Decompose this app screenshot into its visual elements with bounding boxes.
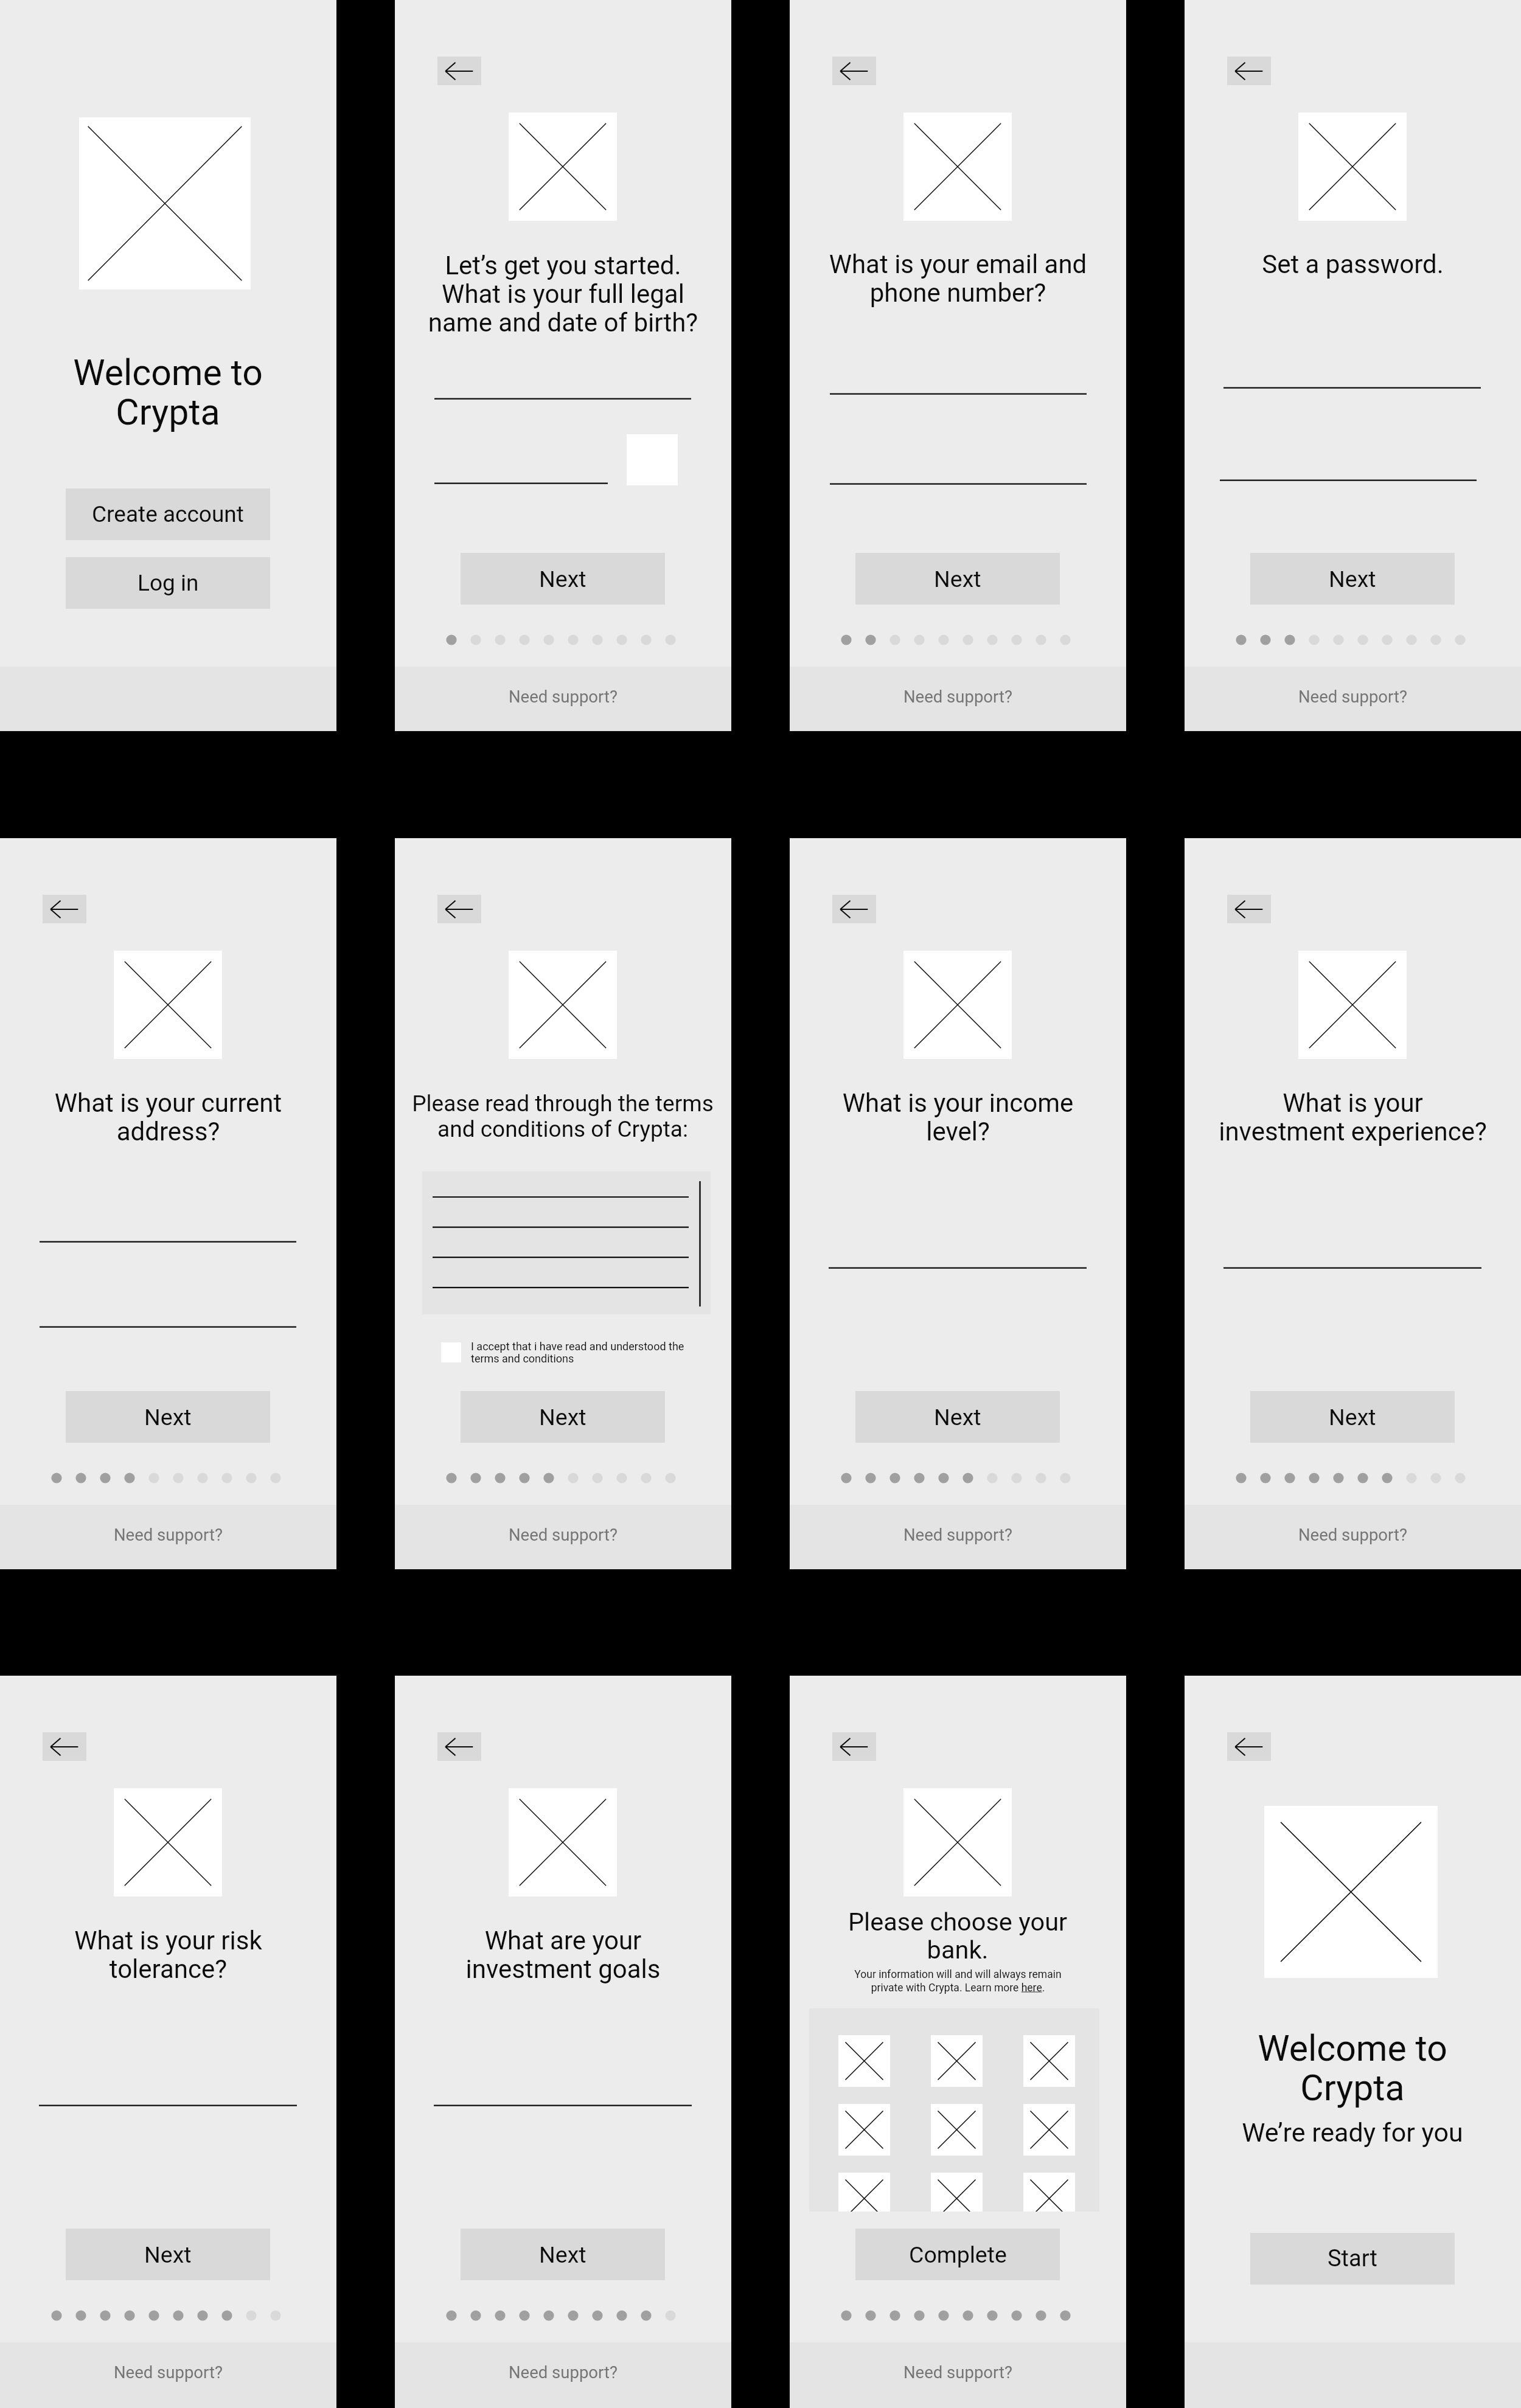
button[interactable]: Back: [1227, 57, 1271, 85]
button[interactable]: Choose bank: [838, 2104, 890, 2156]
staticText: Need support?: [114, 1525, 223, 1544]
staticText: Create account: [92, 501, 244, 527]
staticText: Let’s get you started. What is your full…: [413, 251, 713, 338]
button[interactable]: Back: [832, 1732, 876, 1761]
staticText: Need support?: [509, 687, 618, 706]
staticText: Need support?: [509, 1525, 618, 1544]
button[interactable]: Complete: [855, 2229, 1060, 2280]
staticText: Next: [1329, 566, 1376, 592]
staticText: What is your investment experience?: [1203, 1088, 1503, 1147]
button[interactable]: Next: [1250, 553, 1455, 605]
staticText: What is your risk tolerance?: [18, 1926, 318, 1984]
staticText: We’re ready for you: [1213, 2117, 1492, 2148]
button[interactable]: Need support?: [395, 1505, 731, 1569]
button[interactable]: Next: [66, 1391, 270, 1443]
button[interactable]: Need support?: [395, 2342, 731, 2407]
staticText: Need support?: [903, 687, 1013, 706]
button[interactable]: Choose bank: [1023, 2104, 1075, 2156]
button[interactable]: Log in: [66, 557, 270, 609]
button[interactable]: Need support?: [790, 1505, 1126, 1569]
staticText: Next: [144, 2241, 192, 2268]
staticText: Need support?: [903, 1525, 1013, 1544]
button[interactable]: Back: [437, 895, 481, 923]
button[interactable]: Back: [832, 57, 876, 85]
button[interactable]: Back: [832, 895, 876, 923]
staticText: Next: [539, 1404, 586, 1431]
button[interactable]: Choose bank: [838, 2035, 890, 2087]
staticText: Complete: [909, 2241, 1007, 2268]
button[interactable]: I accept that i have read and understood…: [471, 1340, 685, 1365]
button[interactable]: Need support?: [1185, 1505, 1521, 1569]
staticText: Next: [144, 1404, 192, 1431]
button[interactable]: Choose bank: [931, 2035, 983, 2087]
staticText: Need support?: [1298, 687, 1408, 706]
button[interactable]: Choose bank: [838, 2173, 890, 2212]
button[interactable]: Back: [437, 57, 481, 85]
staticText: What are your investment goals: [413, 1926, 713, 1984]
staticText: Start: [1328, 2245, 1377, 2272]
staticText: Need support?: [1298, 1525, 1408, 1544]
button[interactable]: Back: [1227, 895, 1271, 923]
staticText: Next: [539, 2241, 586, 2268]
button[interactable]: Start: [1250, 2233, 1455, 2285]
button[interactable]: Choose bank: [931, 2173, 983, 2212]
staticText: Set a password.: [1203, 249, 1503, 279]
button[interactable]: Accept terms: [441, 1342, 461, 1362]
button[interactable]: Choose bank: [1023, 2035, 1075, 2087]
staticText: Log in: [137, 570, 199, 596]
staticText: Please read through the terms and condit…: [405, 1091, 721, 1142]
button[interactable]: Need support?: [790, 667, 1126, 731]
button[interactable]: Next: [66, 2229, 270, 2280]
staticText: Need support?: [903, 2362, 1013, 2382]
button[interactable]: Need support?: [395, 667, 731, 731]
button[interactable]: Back: [43, 895, 86, 923]
staticText: Next: [1329, 1404, 1376, 1431]
button[interactable]: Create account: [66, 488, 270, 540]
staticText: What is your current address?: [18, 1088, 318, 1147]
button[interactable]: Next: [855, 553, 1060, 605]
staticText: Welcome to Crypta: [28, 352, 308, 434]
staticText: Next: [539, 566, 586, 592]
button[interactable]: Next: [461, 2229, 665, 2280]
button[interactable]: Choose bank: [1023, 2173, 1075, 2212]
staticText: I accept that i have read and understood…: [471, 1340, 685, 1365]
button[interactable]: Next: [1250, 1391, 1455, 1443]
staticText: Need support?: [509, 2362, 618, 2382]
button[interactable]: Next: [855, 1391, 1060, 1443]
staticText: Your information will and will always re…: [851, 1968, 1065, 1994]
button[interactable]: Back: [43, 1732, 86, 1761]
button[interactable]: Choose bank: [931, 2104, 983, 2156]
button[interactable]: Need support?: [790, 2342, 1126, 2407]
staticText: Need support?: [114, 2362, 223, 2382]
staticText: What is your email and phone number?: [808, 249, 1108, 308]
button[interactable]: Need support?: [1185, 667, 1521, 731]
staticText: Welcome to Crypta: [1213, 2027, 1492, 2109]
button[interactable]: Back: [437, 1732, 481, 1761]
button[interactable]: Next: [461, 553, 665, 605]
staticText: Next: [934, 1404, 981, 1431]
button[interactable]: Next: [461, 1391, 665, 1443]
staticText: Next: [934, 566, 981, 592]
staticText: Please choose your bank.: [815, 1907, 1101, 1965]
button[interactable]: Need support?: [0, 2342, 336, 2407]
button[interactable]: Back: [1227, 1732, 1271, 1761]
staticText: What is your income level?: [808, 1088, 1108, 1147]
button[interactable]: Need support?: [0, 1505, 336, 1569]
